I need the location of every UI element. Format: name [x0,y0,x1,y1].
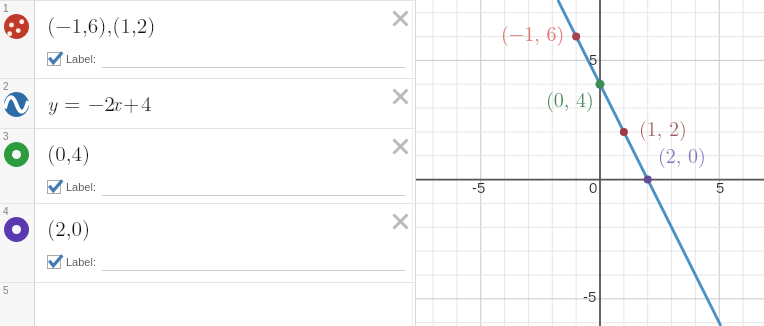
staticText: + [123,87,140,117]
button[interactable]: Delete expression 4 [392,213,409,230]
staticText: Label: [66,53,96,65]
button[interactable]: 2 [0,79,414,128]
button[interactable]: Delete expression 2 [392,88,409,105]
staticText: (1, 2) [639,113,687,141]
staticText: 5 [716,179,725,196]
button[interactable]: Delete expression 3 [392,138,409,155]
staticText: (−1,6),(1,2) [47,9,156,39]
staticText: Label: [66,181,96,193]
staticText: 2 [3,81,9,92]
staticText: -5 [472,179,486,196]
staticText: (2, 0) [658,140,706,168]
button[interactable]: 5 [0,283,414,326]
button[interactable]: 3 [0,129,414,203]
button[interactable]: 1 [0,1,414,78]
staticText: 0 [589,179,598,196]
staticText: 5 [3,285,9,296]
button[interactable]: Label: [47,179,92,194]
staticText: 3 [3,131,9,142]
staticText: x [111,87,121,117]
button[interactable]: 4 [0,204,414,282]
staticText: -5 [583,288,597,305]
staticText: (0, 4) [546,84,594,112]
staticText: Label: [66,256,96,268]
staticText: −2 [88,87,115,117]
staticText: = [64,87,81,117]
staticText: 5 [589,51,598,68]
staticText: 1 [3,3,9,14]
staticText: (−1, 6) [501,18,565,46]
staticText: (0,4) [47,137,91,167]
staticText: 4 [141,87,152,117]
button[interactable]: Label: [47,51,92,66]
staticText: 4 [3,206,9,217]
staticText: (2,0) [47,212,91,242]
staticText: y [47,87,58,117]
button[interactable]: Delete expression 1 [392,10,409,27]
button[interactable]: Label: [47,254,92,269]
